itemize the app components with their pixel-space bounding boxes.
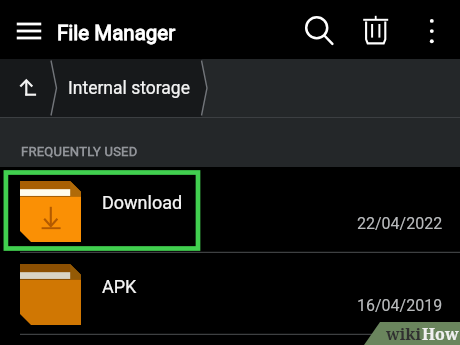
staticText: 16/04/2019 (357, 296, 443, 315)
staticText: 22/04/2022 (357, 214, 443, 233)
button[interactable]: Internal storage (68, 78, 190, 99)
staticText: APK (102, 276, 137, 297)
button[interactable]: More options (412, 10, 452, 50)
button[interactable]: Delete (353, 7, 398, 52)
staticText: wiki (386, 323, 422, 345)
button[interactable]: Open navigation menu (10, 11, 48, 49)
button[interactable]: Download (0, 167, 460, 253)
staticText: Download (102, 192, 183, 213)
staticText: File Manager (57, 21, 176, 45)
staticText: How (422, 323, 459, 345)
button[interactable]: APK (0, 253, 460, 335)
button[interactable]: Go up one level (7, 69, 45, 107)
button[interactable]: Search (294, 7, 339, 52)
staticText: FREQUENTLY USED (21, 144, 138, 159)
